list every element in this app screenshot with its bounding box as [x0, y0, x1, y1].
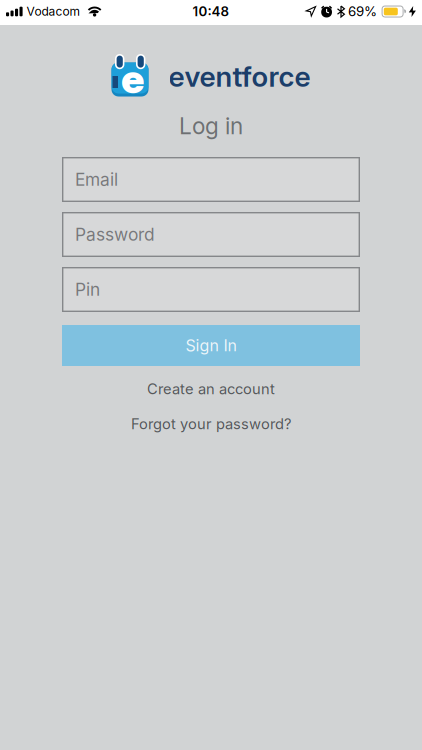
staticText: Forgot your password? — [131, 415, 291, 433]
staticText: Email — [75, 169, 118, 190]
staticText: Pin — [75, 279, 100, 300]
staticText: eventforce — [168, 60, 310, 93]
staticText: Password — [75, 224, 155, 245]
staticText: Create an account — [147, 380, 275, 398]
staticText: e — [121, 55, 144, 102]
staticText: 10:48 — [192, 4, 229, 19]
staticText: Sign In — [185, 336, 236, 355]
staticText: Log in — [179, 113, 243, 139]
staticText: Vodacom — [27, 4, 81, 19]
staticText: 69% — [348, 4, 377, 19]
